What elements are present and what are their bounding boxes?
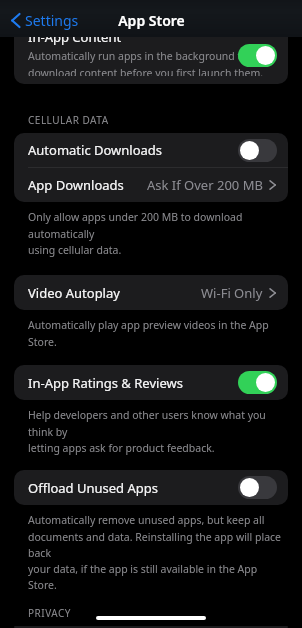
button[interactable]: In-App Content bbox=[238, 44, 277, 67]
staticText: Automatic Downloads bbox=[28, 141, 238, 159]
button[interactable]: In-App Content bbox=[14, 36, 288, 84]
staticText: Video Autoplay bbox=[28, 284, 201, 302]
staticText: Automatically play app preview videos in… bbox=[28, 318, 284, 349]
button[interactable]: In-App Ratings & Reviews bbox=[238, 371, 277, 394]
button[interactable]: Video Autoplay bbox=[14, 275, 288, 310]
button[interactable]: App Downloads bbox=[14, 168, 288, 202]
staticText: App Downloads bbox=[28, 176, 147, 194]
staticText: CELLULAR DATA bbox=[28, 113, 109, 127]
button[interactable]: Settings bbox=[9, 9, 81, 32]
staticText: Automatically run apps in the background… bbox=[28, 49, 264, 76]
button[interactable]: Automatic Downloads bbox=[14, 133, 288, 167]
staticText: In-App Content bbox=[28, 36, 122, 46]
staticText: Settings bbox=[25, 11, 79, 30]
staticText: Help developers and other users know wha… bbox=[28, 408, 284, 455]
staticText: Automatically remove unused apps, but ke… bbox=[28, 513, 284, 592]
staticText: App Store bbox=[118, 11, 185, 30]
staticText: In-App Ratings & Reviews bbox=[28, 374, 238, 392]
staticText: Wi-Fi Only bbox=[201, 284, 263, 302]
staticText: Only allow apps under 200 MB to download… bbox=[28, 210, 284, 257]
button[interactable]: Offload Unused Apps bbox=[238, 476, 277, 499]
staticText: Offload Unused Apps bbox=[28, 479, 238, 497]
button[interactable]: Offload Unused Apps bbox=[14, 470, 288, 505]
staticText: Ask If Over 200 MB bbox=[147, 176, 263, 194]
button[interactable]: In-App Ratings & Reviews bbox=[14, 365, 288, 400]
button[interactable]: Automatic Downloads bbox=[238, 139, 277, 162]
staticText: PRIVACY bbox=[28, 606, 71, 620]
